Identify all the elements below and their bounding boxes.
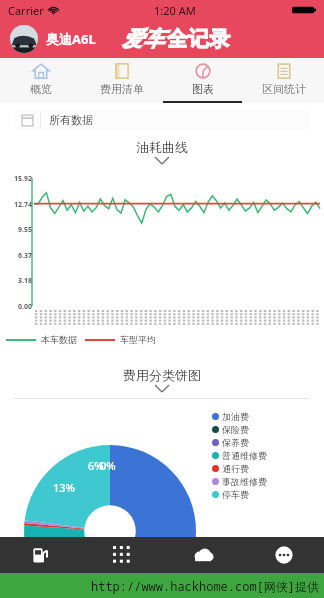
staticText: 本车数据 [41, 334, 77, 345]
staticText: 爱车 [122, 26, 164, 52]
button[interactable]: 费用分类饼图 [0, 367, 324, 392]
staticText: 普通维修费 [222, 450, 267, 461]
button[interactable]: 全部 [81, 537, 162, 573]
staticText: 奥迪A6L [46, 30, 96, 48]
button[interactable]: 油耗曲线 [0, 139, 324, 164]
staticText: 图表 [192, 82, 214, 96]
button[interactable]: 加油 [0, 537, 81, 573]
staticText: http://www.hackhome.com[网侠]提供 [91, 578, 320, 594]
staticText: 6% [88, 458, 104, 473]
staticText: 9.55 [0, 225, 32, 235]
staticText: 3.18 [0, 276, 32, 286]
button[interactable]: 云同步 [162, 537, 243, 573]
staticText: 13% [53, 480, 75, 495]
staticText: 全记录 [167, 26, 230, 52]
staticText: 15.92 [0, 174, 32, 184]
staticText: 0% [100, 458, 116, 473]
staticText: 保险费 [222, 424, 249, 435]
staticText: 事故维修费 [222, 476, 267, 487]
staticText: 加油费 [222, 411, 249, 422]
staticText: 停车费 [222, 489, 249, 500]
staticText: 6.37 [0, 251, 32, 261]
button[interactable]: 图表 [162, 58, 243, 103]
staticText: 通行费 [222, 463, 249, 474]
button[interactable]: 车辆头像 [10, 25, 38, 53]
staticText: 0.00 [0, 302, 32, 312]
staticText: 费用分类饼图 [123, 367, 201, 383]
staticText: Carrier [8, 3, 44, 18]
staticText: 12.74 [0, 200, 32, 210]
staticText: 费用清单 [100, 82, 144, 96]
button[interactable]: 概览 [0, 58, 81, 103]
button[interactable]: 更多 [243, 537, 324, 573]
button[interactable]: 费用清单 [81, 58, 162, 103]
staticText: 区间统计 [262, 82, 306, 96]
button[interactable]: 区间统计 [243, 58, 324, 103]
button[interactable]: 所有数据 [14, 110, 310, 130]
staticText: 油耗曲线 [136, 139, 188, 155]
staticText: 所有数据 [49, 113, 93, 127]
staticText: 车型平均 [120, 334, 156, 345]
staticText: 概览 [30, 82, 52, 96]
staticText: 保养费 [222, 437, 249, 448]
staticText: 1:20 AM [154, 3, 196, 18]
